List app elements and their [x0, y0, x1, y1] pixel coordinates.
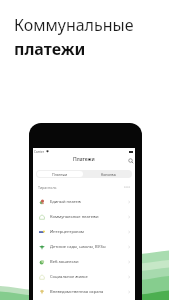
- button[interactable]: Детские сады, школы, ВУЗы: [33, 239, 135, 254]
- button[interactable]: Поиск: [127, 157, 134, 164]
- button[interactable]: Веб-кошельки: [33, 254, 135, 269]
- staticText: Коммунальные платежи: [50, 214, 99, 220]
- button[interactable]: Копилка: [85, 171, 131, 177]
- staticText: Платежи: [73, 156, 95, 163]
- button[interactable]: Социальное жилье: [33, 269, 135, 284]
- staticText: Социальное жилье: [50, 274, 88, 280]
- button[interactable]: Единый платеж: [33, 194, 135, 209]
- staticText: Копилка: [101, 172, 116, 177]
- staticText: платежи: [14, 38, 86, 60]
- staticText: Единый платеж: [50, 199, 81, 205]
- button[interactable]: Коммунальные платежи: [33, 209, 135, 224]
- staticText: Веб-кошельки: [50, 259, 79, 265]
- staticText: Платежи: [52, 172, 68, 177]
- staticText: Интерцентроком: [50, 229, 84, 235]
- button[interactable]: Интерцентроком: [33, 224, 135, 239]
- staticText: Детские сады, школы, ВУЗы: [50, 244, 106, 250]
- staticText: Carrier: [34, 150, 45, 154]
- button[interactable]: Платежи: [37, 171, 83, 177]
- staticText: Вневедомственная охрана: [50, 289, 104, 295]
- staticText: Тирасполь: [38, 185, 57, 190]
- staticText: Коммунальные: [14, 14, 134, 36]
- button[interactable]: Вневедомственная охрана: [33, 284, 135, 299]
